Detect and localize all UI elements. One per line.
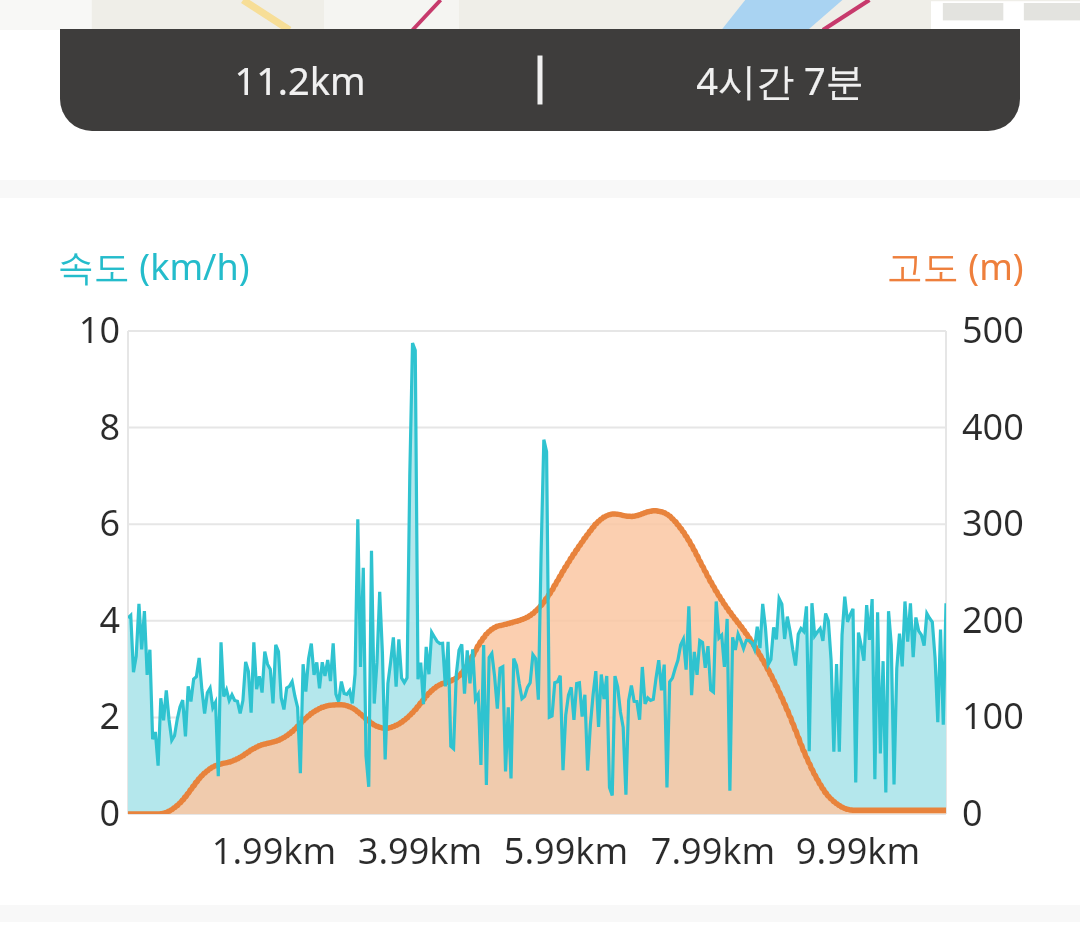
- staticText: 0: [64, 788, 120, 837]
- staticText: 고도 (m): [887, 242, 1024, 291]
- button[interactable]: 11.2km: [60, 29, 1020, 131]
- staticText: 1.99km: [189, 826, 359, 875]
- staticText: 8: [64, 402, 120, 451]
- staticText: 2: [64, 691, 120, 740]
- staticText: 9.99km: [773, 826, 943, 875]
- staticText: 500: [962, 305, 1062, 354]
- staticText: 400: [962, 402, 1062, 451]
- staticText: 11.2km: [60, 54, 540, 106]
- staticText: 0: [962, 788, 1062, 837]
- staticText: 4: [64, 595, 120, 644]
- staticText: 4시간 7분: [540, 54, 1020, 106]
- staticText: 3.99km: [335, 826, 505, 875]
- staticText: 10: [64, 305, 120, 354]
- staticText: 100: [962, 691, 1062, 740]
- staticText: 300: [962, 498, 1062, 547]
- staticText: 6: [64, 498, 120, 547]
- staticText: 7.99km: [628, 826, 798, 875]
- staticText: 5.99km: [481, 826, 651, 875]
- button[interactable]: Route map: [0, 0, 1080, 30]
- staticText: 200: [962, 595, 1062, 644]
- staticText: 속도 (km/h): [58, 242, 250, 291]
